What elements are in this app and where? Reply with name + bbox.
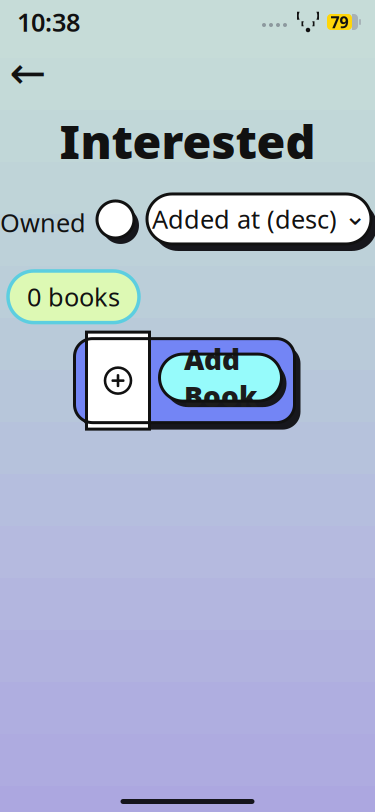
button[interactable]: Owned	[0, 197, 139, 248]
staticText: 10:38	[17, 5, 80, 39]
staticText: ⌄	[344, 200, 366, 231]
button[interactable]: Added at (desc)	[147, 194, 375, 251]
button[interactable]: Add Book	[159, 354, 286, 407]
staticText: ←	[9, 48, 46, 98]
staticText: Owned	[0, 206, 86, 239]
staticText: Add Book	[184, 340, 257, 415]
staticText: 79	[330, 11, 348, 33]
button[interactable]: Back	[4, 50, 52, 96]
staticText: 0 books	[27, 280, 120, 314]
staticText: Interested	[59, 110, 315, 172]
staticText: Added at (desc)	[152, 202, 337, 236]
